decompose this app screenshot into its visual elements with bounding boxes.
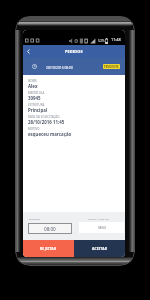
staticText: 28/10/2016 11:45 xyxy=(28,119,65,125)
staticText: DATA DA SOLICITAÇÃO xyxy=(28,115,60,119)
button[interactable]: 08:00 xyxy=(79,222,124,233)
button[interactable]: 08:00 xyxy=(28,223,72,234)
staticText: esqueceu marcação xyxy=(28,131,72,137)
staticText: Alex xyxy=(28,83,38,89)
staticText: NOME xyxy=(28,79,37,83)
staticText: Principal xyxy=(28,107,48,113)
staticText: 52% xyxy=(98,38,105,42)
staticText: ESTRUTURA xyxy=(28,103,45,107)
staticText: PEDIDOS xyxy=(65,49,83,54)
staticText: ACEITAR xyxy=(92,246,108,251)
staticText: 30945 xyxy=(28,95,41,101)
button[interactable]: Back xyxy=(23,45,34,58)
staticText: 11:48 xyxy=(111,37,121,42)
staticText: PENDENTE xyxy=(104,65,119,69)
button[interactable]: PENDENTE xyxy=(103,64,120,69)
staticText: REJEITAR xyxy=(40,246,57,251)
staticText: VALOR A ACEITAR xyxy=(88,217,110,220)
staticText: 08:00 xyxy=(44,226,56,232)
button[interactable]: ACEITAR xyxy=(74,240,125,257)
staticText: PERÍODO xyxy=(29,217,41,220)
staticText: MATRÍCULA xyxy=(28,91,45,95)
button[interactable]: REJEITAR xyxy=(23,240,74,257)
staticText: 28/10/2016 08:00 xyxy=(46,65,73,69)
staticText: 08:00 xyxy=(98,226,106,230)
staticText: MOTIVO xyxy=(28,127,40,131)
